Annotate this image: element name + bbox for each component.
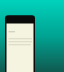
button[interactable]: Phone preview (0, 0, 64, 72)
